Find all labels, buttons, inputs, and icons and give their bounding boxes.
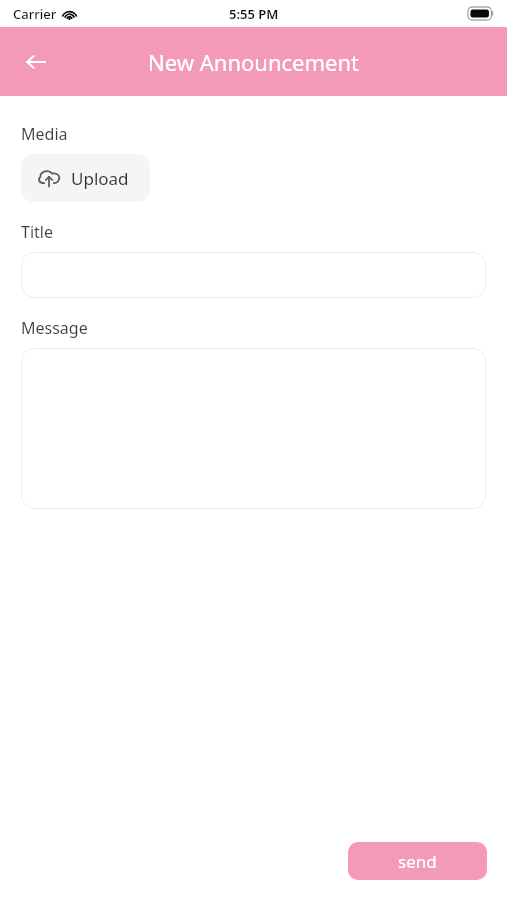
button[interactable]: Back xyxy=(14,40,58,84)
button[interactable] xyxy=(21,252,486,298)
staticText: Message xyxy=(21,317,88,339)
staticText: Media xyxy=(21,123,68,145)
staticText: Title xyxy=(21,221,53,243)
button[interactable]: Upload xyxy=(21,154,150,202)
button[interactable]: send xyxy=(348,842,487,880)
staticText: Carrier xyxy=(13,5,57,23)
staticText: 5:55 PM xyxy=(229,5,279,23)
staticText: Upload xyxy=(71,167,129,190)
staticText: New Announcement xyxy=(148,47,359,77)
staticText: send xyxy=(398,850,437,873)
